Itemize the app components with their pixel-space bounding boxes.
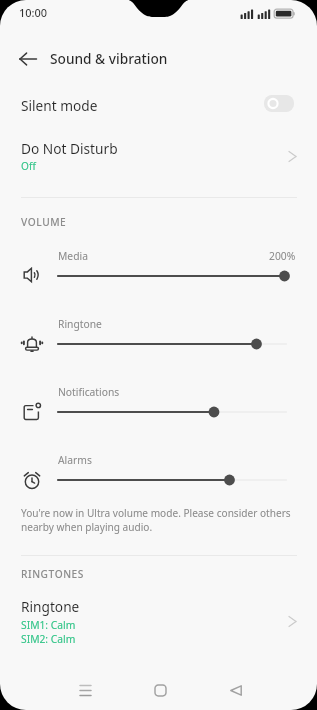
staticText: 10:00 <box>19 5 48 20</box>
staticText: Off <box>21 159 36 173</box>
button[interactable]: Ringtone volume <box>50 335 294 353</box>
staticText: RINGTONES <box>21 567 84 581</box>
button[interactable]: Media volume <box>50 267 294 285</box>
button[interactable] <box>0 85 317 123</box>
staticText: Silent mode <box>21 96 98 115</box>
staticText: Sound & vibration <box>50 49 168 68</box>
button[interactable] <box>0 593 317 651</box>
staticText: Alarms <box>58 453 92 467</box>
button[interactable]: Back <box>211 674 261 706</box>
button[interactable]: Notifications volume <box>50 403 294 421</box>
button[interactable]: Back <box>9 40 46 77</box>
staticText: Notifications <box>58 385 120 399</box>
staticText: SIM2: Calm <box>21 632 76 646</box>
button[interactable]: Silent mode toggle <box>264 95 294 112</box>
staticText: Ringtone <box>21 597 80 616</box>
button[interactable]: Alarms volume <box>50 471 294 489</box>
button[interactable] <box>0 133 317 178</box>
staticText: Ringtone <box>58 317 102 331</box>
button[interactable]: Home <box>135 674 185 706</box>
staticText: 200% <box>269 249 296 263</box>
staticText: Media <box>58 249 88 263</box>
staticText: Do Not Disturb <box>21 139 118 158</box>
staticText: You're now in Ultra volume mode. Please … <box>21 506 301 534</box>
staticText: VOLUME <box>21 215 67 229</box>
button[interactable]: Recent apps <box>60 674 110 706</box>
staticText: SIM1: Calm <box>21 618 76 632</box>
